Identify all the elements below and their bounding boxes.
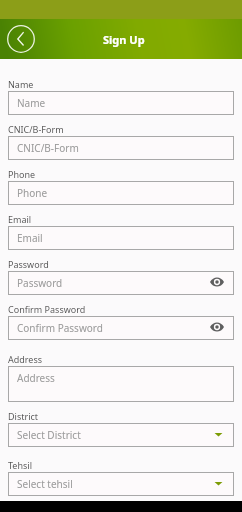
staticText: CNIC/B-Form [17,141,79,155]
staticText: Name [8,78,34,88]
staticText: Phone [17,186,48,200]
button[interactable]: Password [8,271,234,295]
button[interactable]: Show password [208,273,226,291]
staticText: Address [17,371,55,385]
button[interactable]: Select District [8,423,234,447]
button[interactable]: Open dropdown [211,476,225,490]
staticText: Name [17,96,46,110]
button[interactable]: Show password [208,318,226,336]
button[interactable]: Select tehsil [8,472,234,496]
staticText: Select tehsil [17,477,73,491]
staticText: District [8,410,39,420]
staticText: Sign Up [103,32,145,47]
button[interactable]: Email [8,226,234,250]
staticText: Confirm Password [8,303,86,313]
staticText: CNIC/B-Form [8,123,64,133]
staticText: Password [8,258,49,268]
button[interactable]: Open dropdown [211,427,225,441]
button[interactable]: Confirm Password [8,316,234,340]
staticText: Phone [8,168,36,178]
staticText: Email [8,213,32,223]
staticText: Tehsil [8,459,32,469]
staticText: Email [17,231,43,245]
button[interactable]: Back [7,25,35,53]
staticText: Confirm Password [17,321,103,335]
button[interactable]: Phone [8,181,234,205]
staticText: Address [8,353,43,363]
button[interactable]: CNIC/B-Form [8,136,234,160]
button[interactable]: Name [8,91,234,115]
button[interactable]: Address [8,366,234,402]
staticText: Select District [17,428,81,442]
staticText: Password [17,276,63,290]
